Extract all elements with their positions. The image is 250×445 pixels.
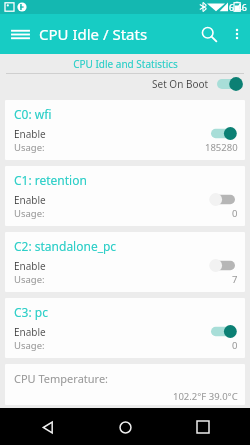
staticText: CPU Idle and Statistics <box>73 57 178 71</box>
staticText: C1: retention <box>14 172 87 188</box>
staticText: Enable <box>14 259 46 273</box>
staticText: C3: pc <box>14 304 48 320</box>
staticText: Usage: <box>14 339 45 352</box>
staticText: CPU Idle / Stats <box>39 24 148 44</box>
button[interactable]: Search <box>194 19 224 49</box>
staticText: Usage: <box>14 141 45 154</box>
button[interactable]: C0: wfi <box>5 100 245 160</box>
staticText: 0 <box>232 207 238 220</box>
staticText: Enable <box>14 127 46 141</box>
button[interactable]: C3: pc <box>5 298 245 358</box>
staticText: 6:46 <box>229 1 247 13</box>
staticText: C2: standalone_pc <box>14 238 117 254</box>
staticText: Set On Boot <box>152 77 209 91</box>
staticText: Usage: <box>14 207 45 220</box>
button[interactable]: Open navigation menu <box>6 20 34 48</box>
staticText: CPU Temperature: <box>14 371 109 386</box>
button[interactable]: CPU Temperature: <box>5 364 245 405</box>
staticText: Usage: <box>14 273 45 286</box>
staticText: Enable <box>14 193 46 207</box>
staticText: Enable <box>14 325 46 339</box>
button[interactable]: More options <box>224 21 250 47</box>
button[interactable]: Set On Boot <box>0 74 250 94</box>
staticText: 0 <box>232 339 238 352</box>
button[interactable]: C2: standalone_pc <box>5 232 245 292</box>
button[interactable]: Back <box>30 410 64 444</box>
button[interactable]: Home <box>108 410 142 444</box>
button[interactable]: Recent apps <box>186 410 220 444</box>
staticText: 7 <box>232 273 238 286</box>
staticText: 102.2°F 39.0°C <box>173 390 238 403</box>
staticText: 185280 <box>205 141 238 154</box>
staticText: C0: wfi <box>14 106 52 122</box>
button[interactable]: C1: retention <box>5 166 245 226</box>
